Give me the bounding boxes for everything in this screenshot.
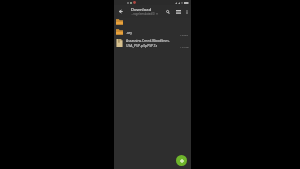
staticText: ...rage/emulated/0: [131, 12, 155, 16]
button[interactable]: Search: [163, 7, 173, 16]
staticText: 4 items: [180, 33, 189, 36]
button[interactable]: [114, 17, 191, 27]
button[interactable]: More options: [183, 8, 190, 15]
staticText: .ary: [126, 30, 132, 35]
staticText: 1.07 GB: [180, 45, 189, 48]
button[interactable]: Assassins.Creed.Bloodlines.: [114, 37, 191, 49]
button[interactable]: View options: [173, 7, 183, 16]
staticText: Download: [131, 7, 152, 13]
button[interactable]: .ary: [114, 27, 191, 37]
button[interactable]: Add: [176, 155, 187, 166]
button[interactable]: Back: [116, 7, 125, 16]
staticText: USA_PSP-p0pPSP.7z: [126, 43, 158, 48]
staticText: Assassins.Creed.Bloodlines.: [126, 38, 170, 43]
